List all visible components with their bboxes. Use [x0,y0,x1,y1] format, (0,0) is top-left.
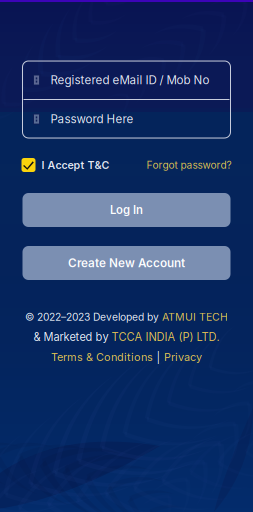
button[interactable]: Terms & Conditions [51,347,202,367]
staticText: Log In [110,203,143,217]
staticText: & Marketed by [33,330,108,344]
staticText: I Accept T&C [41,158,109,171]
staticText: ATMUI TECH [162,311,228,323]
staticText: Forgot password? [146,159,231,171]
staticText: Terms & Conditions [51,350,153,363]
button[interactable]: Forgot password? [146,158,231,172]
staticText: Password Here [50,112,133,126]
button[interactable]: Password Here [22,100,230,138]
button[interactable]: I Accept T&C [21,158,109,172]
button[interactable]: Registered eMail ID / Mob No [22,61,230,99]
staticText: TCCA INDIA (P) LTD. [111,330,219,344]
button[interactable]: Log In [22,193,230,227]
staticText: Privacy [164,350,202,363]
button[interactable]: Create New Account [22,246,230,280]
staticText: | [156,350,160,363]
staticText: © 2022–2023 Developed by [25,311,159,323]
staticText: Create New Account [68,256,185,270]
staticText: Registered eMail ID / Mob No [50,73,209,87]
